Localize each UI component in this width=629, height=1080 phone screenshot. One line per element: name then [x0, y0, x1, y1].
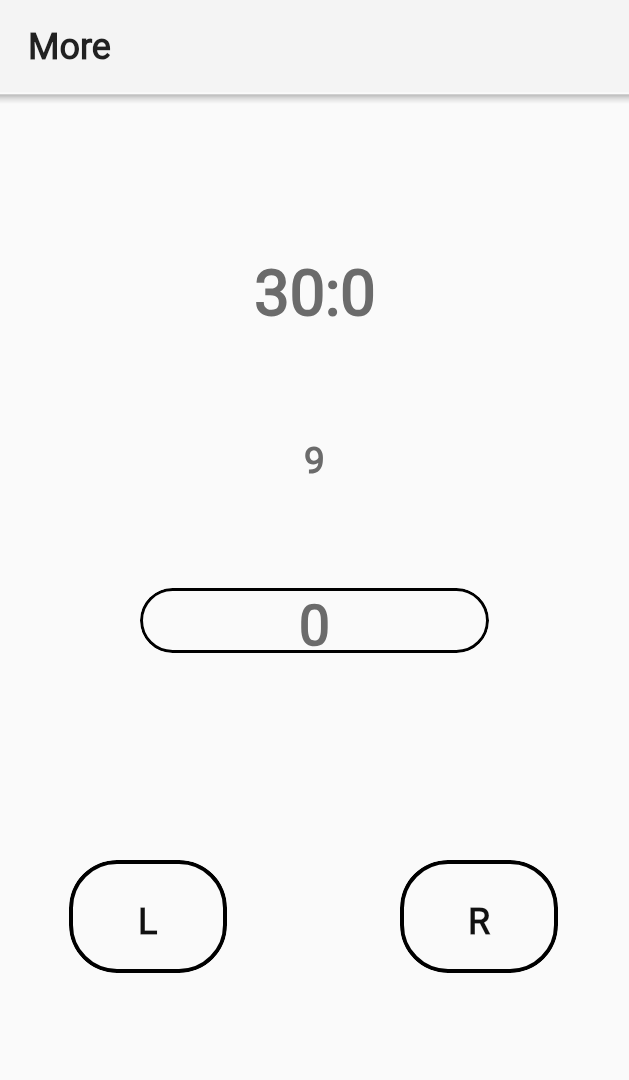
staticText: L — [138, 901, 158, 943]
staticText: 0 — [299, 594, 330, 653]
staticText: 9 — [304, 439, 325, 482]
staticText: R — [468, 901, 491, 943]
button[interactable]: L — [69, 860, 227, 973]
button[interactable]: 0 — [140, 588, 489, 653]
button[interactable]: R — [400, 860, 558, 973]
staticText: 30:0 — [254, 257, 376, 331]
staticText: More — [28, 26, 111, 68]
